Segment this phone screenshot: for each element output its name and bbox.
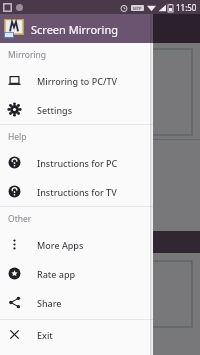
staticText: et & Lux… <box>4 147 51 161</box>
staticText: Other <box>8 213 32 225</box>
staticText: Mirroring <box>8 49 47 61</box>
button[interactable]: Share <box>0 288 153 317</box>
staticText: Share <box>37 297 62 309</box>
staticText: More Apps <box>37 239 84 251</box>
staticText: Exit <box>37 329 53 341</box>
staticText: Screen Mirroring <box>31 22 118 37</box>
staticText: Mirroring to PC/TV <box>37 75 117 87</box>
staticText: n your <box>14 71 48 86</box>
staticText: Instructions for TV <box>37 186 117 198</box>
staticText: Instructions for PC <box>37 157 118 169</box>
staticText: Settings <box>37 104 73 116</box>
button[interactable]: Instructions for TV <box>0 177 153 206</box>
button[interactable]: Settings <box>0 95 153 124</box>
staticText: network. <box>12 287 58 302</box>
button[interactable]: Exit <box>0 320 153 349</box>
button[interactable]: Screen Mirroring <box>0 0 153 43</box>
button[interactable]: Rate app <box>0 259 153 288</box>
button[interactable]: Instructions for PC <box>0 148 153 177</box>
button[interactable]: Mirroring to PC/TV <box>0 66 153 95</box>
staticText: Help <box>8 131 27 143</box>
staticText: 11:50 <box>176 2 197 13</box>
staticText: Rate app <box>37 268 76 280</box>
staticText: MTP <box>133 6 142 11</box>
button[interactable]: More Apps <box>0 230 153 259</box>
staticText: ber <box>14 91 32 106</box>
